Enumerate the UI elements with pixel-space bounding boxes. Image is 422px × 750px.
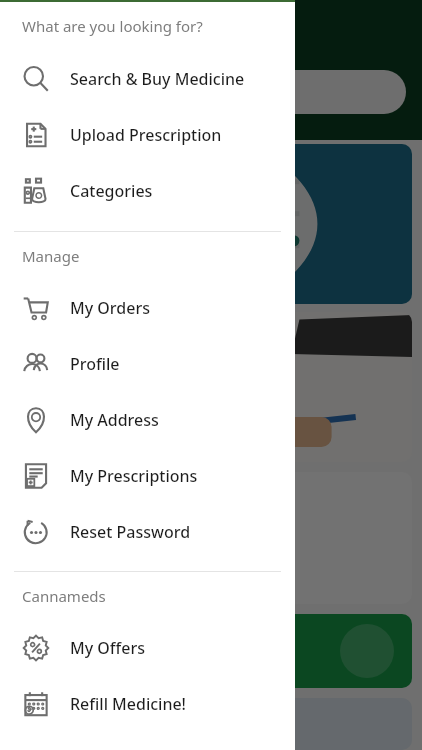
button[interactable]: Profile <box>0 336 295 392</box>
button[interactable]: My Orders <box>0 280 295 336</box>
staticText: Reminder <box>181 571 242 589</box>
staticText: Refill Medicine! <box>70 693 186 715</box>
staticText: My Prescriptions <box>70 465 198 487</box>
staticText: My Offers <box>70 637 145 659</box>
staticText: Manage <box>22 246 80 266</box>
staticText: Categories <box>70 180 153 202</box>
staticText: Reset Password <box>70 521 191 543</box>
staticText: Search for medicine and otc … <box>34 83 233 102</box>
staticText: Search & Buy Medicine <box>70 68 245 90</box>
button[interactable]: Upload Prescription <box>0 107 295 163</box>
staticText: Upload Prescription <box>70 124 222 146</box>
button[interactable]: My Prescriptions <box>0 448 295 504</box>
button[interactable]: Manage <box>10 472 412 604</box>
staticText: My Orders <box>70 297 150 319</box>
button[interactable]: Order on WhatsApp <box>10 614 412 688</box>
staticText: Cannameds <box>22 586 106 606</box>
button[interactable]: Refill Medicine! <box>0 676 295 732</box>
button[interactable]: Search & Buy Medicine <box>0 51 295 107</box>
staticText: Profile <box>70 353 120 375</box>
button[interactable]: Search for medicine and otc … <box>16 70 406 114</box>
staticText: What are you looking for? <box>22 16 203 36</box>
staticText: My Address <box>70 409 159 431</box>
staticText: Order on WhatsApp <box>26 640 183 662</box>
button[interactable]: My Address <box>0 392 295 448</box>
button[interactable]: Reset Password <box>0 504 295 560</box>
button[interactable]: My Offers <box>0 620 295 676</box>
button[interactable]: Categories <box>0 163 295 219</box>
